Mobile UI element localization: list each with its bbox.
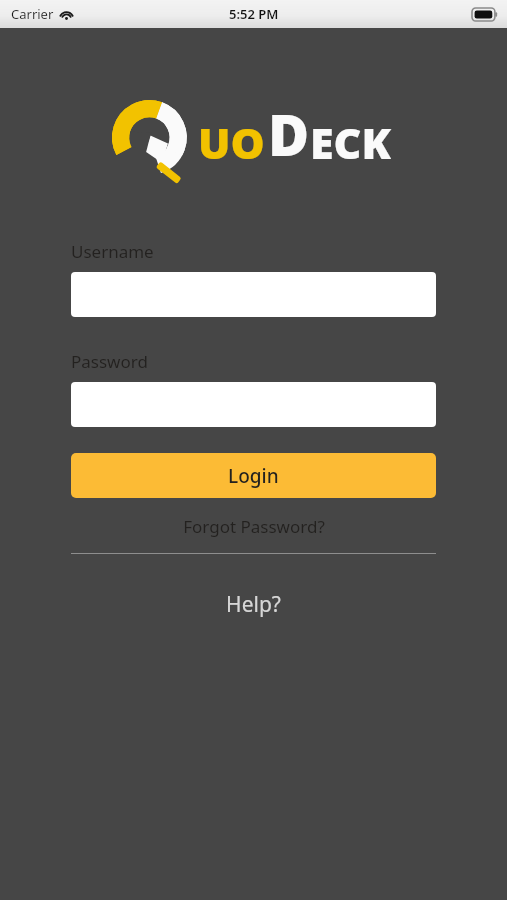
staticText: Username xyxy=(71,240,154,263)
staticText: UO xyxy=(198,113,265,172)
staticText: Help? xyxy=(226,590,281,619)
button[interactable] xyxy=(71,382,436,427)
button[interactable]: Forgot Password? xyxy=(71,510,436,542)
staticText: ECK xyxy=(310,113,392,172)
button[interactable] xyxy=(71,272,436,317)
button[interactable]: Login xyxy=(71,453,436,498)
staticText: 5:52 PM xyxy=(229,5,279,23)
staticText: Forgot Password? xyxy=(183,515,325,538)
staticText: Password xyxy=(71,350,148,373)
staticText: Carrier xyxy=(11,5,54,23)
button[interactable]: Help? xyxy=(71,587,436,621)
staticText: D xyxy=(268,96,310,172)
staticText: Login xyxy=(228,463,279,489)
